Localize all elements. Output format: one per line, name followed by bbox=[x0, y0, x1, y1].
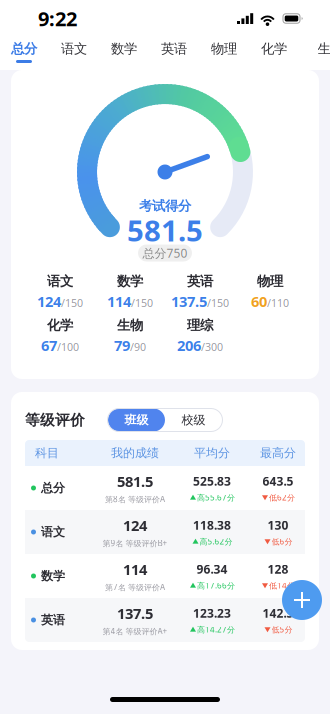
staticText: 物理 bbox=[211, 41, 237, 57]
button[interactable]: 物理 bbox=[199, 37, 249, 70]
staticText: 低62分 bbox=[269, 492, 295, 503]
staticText: 总分750 bbox=[142, 245, 187, 261]
staticText: 第7名 等级评价A bbox=[105, 582, 165, 592]
staticText: 第9名 等级评价B+ bbox=[102, 538, 167, 548]
staticText: /150 bbox=[131, 296, 153, 310]
staticText: 低5分 bbox=[271, 624, 292, 635]
staticText: 低14分 bbox=[269, 580, 295, 591]
button[interactable]: 语文 bbox=[25, 510, 305, 554]
button[interactable]: 物理 bbox=[235, 273, 305, 311]
button[interactable]: 化学 bbox=[25, 317, 95, 355]
staticText: 等级评价 bbox=[25, 411, 85, 429]
staticText: 123.23 bbox=[193, 605, 231, 621]
button[interactable]: 化学 bbox=[249, 37, 299, 70]
staticText: 数学 bbox=[111, 41, 137, 57]
staticText: 79 bbox=[114, 335, 130, 355]
staticText: 第4名 等级评价A+ bbox=[102, 626, 167, 636]
staticText: 高17.66分 bbox=[197, 580, 235, 591]
button[interactable]: 理综 bbox=[165, 317, 235, 355]
button[interactable]: 总分 bbox=[0, 37, 49, 70]
staticText: 9:22 bbox=[38, 5, 77, 32]
staticText: 643.5 bbox=[262, 473, 293, 489]
staticText: 206 bbox=[177, 335, 201, 355]
staticText: /150 bbox=[61, 296, 83, 310]
staticText: 114 bbox=[123, 559, 147, 579]
staticText: 我的成绩 bbox=[111, 446, 159, 460]
staticText: 生 bbox=[317, 41, 330, 57]
button[interactable]: 总分 bbox=[25, 466, 305, 510]
staticText: 化学 bbox=[47, 317, 73, 333]
staticText: /150 bbox=[207, 296, 229, 310]
staticText: 物理 bbox=[257, 273, 283, 289]
staticText: 考试得分 bbox=[139, 198, 191, 214]
staticText: 英语 bbox=[187, 273, 213, 289]
staticText: 60 bbox=[251, 291, 267, 311]
staticText: 数学 bbox=[41, 569, 65, 583]
button[interactable]: 生 bbox=[299, 37, 330, 70]
staticText: 低6分 bbox=[271, 536, 292, 547]
button[interactable]: 英语 bbox=[25, 598, 305, 642]
staticText: 最高分 bbox=[260, 446, 296, 460]
staticText: 525.83 bbox=[193, 473, 231, 489]
staticText: 142.5 bbox=[262, 605, 293, 621]
staticText: 化学 bbox=[261, 41, 287, 57]
staticText: 班级 bbox=[124, 413, 148, 427]
staticText: /110 bbox=[267, 296, 289, 310]
staticText: 生物 bbox=[117, 317, 143, 333]
staticText: 语文 bbox=[61, 41, 87, 57]
staticText: 语文 bbox=[47, 273, 73, 289]
staticText: 英语 bbox=[41, 613, 65, 627]
staticText: 总分 bbox=[41, 481, 65, 495]
staticText: 137.5 bbox=[171, 291, 207, 311]
staticText: 英语 bbox=[161, 41, 187, 57]
staticText: 平均分 bbox=[194, 446, 230, 460]
staticText: 581.5 bbox=[127, 210, 203, 249]
button[interactable]: 生物 bbox=[95, 317, 165, 355]
staticText: 语文 bbox=[41, 525, 65, 539]
staticText: /90 bbox=[130, 340, 146, 354]
staticText: 130 bbox=[267, 517, 288, 533]
staticText: 校级 bbox=[181, 413, 205, 427]
staticText: 114 bbox=[107, 291, 131, 311]
button[interactable]: 英语 bbox=[165, 273, 235, 311]
staticText: 数学 bbox=[117, 273, 143, 289]
staticText: 581.5 bbox=[117, 471, 153, 491]
button[interactable]: 数学 bbox=[99, 37, 149, 70]
staticText: 科目 bbox=[35, 446, 59, 460]
staticText: 124 bbox=[37, 291, 61, 311]
staticText: 高55.67分 bbox=[197, 492, 235, 503]
staticText: 67 bbox=[41, 335, 57, 355]
staticText: 第8名 等级评价A bbox=[105, 494, 165, 504]
staticText: 137.5 bbox=[117, 603, 153, 623]
button[interactable]: 英语 bbox=[149, 37, 199, 70]
staticText: 124 bbox=[123, 515, 147, 535]
button[interactable]: Add bbox=[282, 580, 322, 620]
button[interactable]: 班级 bbox=[108, 408, 165, 431]
button[interactable]: 数学 bbox=[95, 273, 165, 311]
staticText: 总分 bbox=[11, 41, 37, 57]
staticText: 高14.27分 bbox=[197, 624, 235, 635]
staticText: 理综 bbox=[187, 317, 213, 333]
button[interactable]: 语文 bbox=[49, 37, 99, 70]
button[interactable]: 数学 bbox=[25, 554, 305, 598]
button[interactable]: 语文 bbox=[25, 273, 95, 311]
staticText: 128 bbox=[267, 561, 288, 577]
button[interactable]: 校级 bbox=[165, 408, 222, 431]
staticText: 96.34 bbox=[196, 561, 227, 577]
staticText: 高5.62分 bbox=[199, 536, 232, 547]
staticText: /100 bbox=[57, 340, 79, 354]
staticText: /300 bbox=[201, 340, 223, 354]
staticText: 118.38 bbox=[193, 517, 231, 533]
